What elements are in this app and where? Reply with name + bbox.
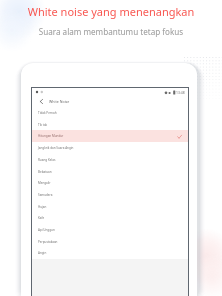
- button[interactable]: Back: [37, 97, 46, 106]
- staticText: 13:48: [176, 90, 185, 95]
- staticText: Samudera: [38, 193, 53, 197]
- staticText: Kafe: [38, 216, 45, 220]
- staticText: Angin: [38, 251, 47, 255]
- button[interactable]: Mengalir: [32, 177, 188, 189]
- staticText: Perpustakaan: [38, 240, 58, 244]
- button[interactable]: Perpustakaan: [32, 236, 188, 248]
- staticText: Tik tak: [38, 123, 48, 127]
- staticText: Mengalir: [38, 181, 51, 185]
- button[interactable]: Samudera: [32, 189, 188, 201]
- button[interactable]: Hitungan Mundur: [32, 130, 188, 142]
- button[interactable]: Jangkrik dan Suara Angin: [32, 142, 188, 154]
- staticText: Hujan: [38, 205, 47, 209]
- staticText: White noise yang menenangkan: [0, 4, 222, 19]
- button[interactable]: Tidak Pernah: [32, 107, 188, 119]
- staticText: Tidak Pernah: [38, 111, 57, 115]
- button[interactable]: Kafe: [32, 212, 188, 224]
- button[interactable]: Angin: [32, 247, 188, 259]
- staticText: Jangkrik dan Suara Angin: [38, 146, 74, 150]
- button[interactable]: Hujan: [32, 201, 188, 213]
- staticText: Bebatuan: [38, 170, 52, 174]
- button[interactable]: Tik tak: [32, 119, 188, 131]
- button[interactable]: Ruang Kelas: [32, 154, 188, 166]
- button[interactable]: Bebatuan: [32, 166, 188, 178]
- staticText: White Noise: [49, 99, 70, 104]
- staticText: Api Unggun: [38, 228, 55, 232]
- staticText: Ruang Kelas: [38, 158, 56, 162]
- button[interactable]: Api Unggun: [32, 224, 188, 236]
- staticText: Suara alam membantumu tetap fokus: [0, 26, 222, 37]
- staticText: Hitungan Mundur: [38, 134, 64, 138]
